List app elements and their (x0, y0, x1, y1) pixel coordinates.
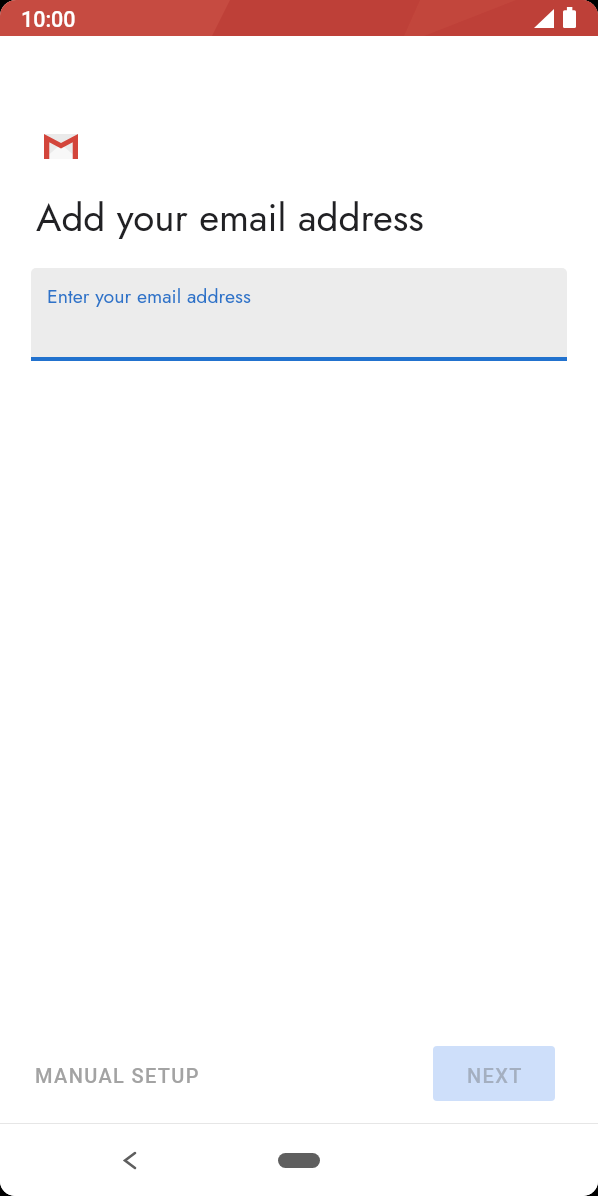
staticText: 10:00 (21, 7, 76, 32)
button[interactable]: Home (269, 1130, 329, 1190)
button[interactable]: Enter your email address (31, 268, 567, 357)
button[interactable]: Back (100, 1130, 160, 1190)
staticText: NEXT (467, 1064, 523, 1087)
staticText: Enter your email address (47, 282, 251, 310)
staticText: Add your email address (36, 190, 424, 246)
button[interactable]: NEXT (433, 1046, 555, 1101)
button[interactable]: MANUAL SETUP (19, 1052, 216, 1099)
staticText: MANUAL SETUP (35, 1064, 200, 1087)
